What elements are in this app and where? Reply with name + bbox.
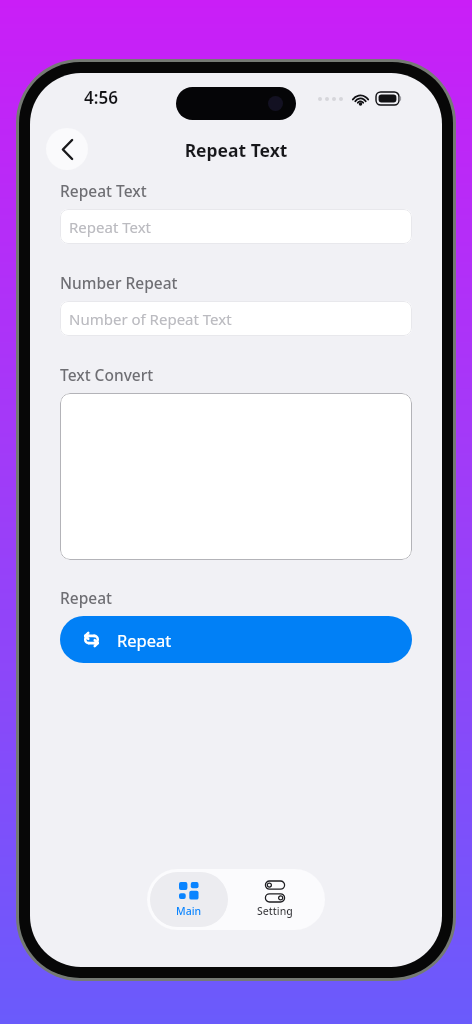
- staticText: Repeat Text: [30, 138, 442, 162]
- staticText: Repeat: [117, 629, 172, 651]
- staticText: Setting: [257, 904, 293, 918]
- staticText: 4:56: [84, 86, 118, 109]
- button[interactable]: Number of Repeat Text: [60, 301, 412, 336]
- staticText: Repeat Text: [69, 217, 152, 237]
- button[interactable]: Repeat: [60, 616, 412, 663]
- staticText: Number of Repeat Text: [69, 309, 232, 329]
- staticText: Main: [176, 904, 202, 918]
- button[interactable]: Main: [150, 872, 228, 927]
- staticText: Repeat Text: [60, 180, 147, 201]
- staticText: Number Repeat: [60, 272, 178, 293]
- staticText: Text Convert: [60, 364, 154, 385]
- button[interactable]: Setting: [228, 872, 322, 927]
- button[interactable]: Repeat Text: [60, 209, 412, 244]
- button[interactable]: [60, 393, 412, 560]
- button[interactable]: Back: [46, 128, 88, 170]
- staticText: Repeat: [60, 587, 113, 608]
